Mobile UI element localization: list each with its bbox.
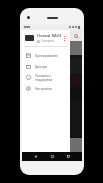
staticText: Смотреть — [41, 39, 54, 43]
button[interactable]: Новый RAV4 — [22, 30, 70, 46]
button[interactable]: Настройки — [22, 83, 70, 94]
button[interactable]: Home — [49, 153, 56, 160]
staticText: Новый RAV4 — [37, 33, 62, 38]
button[interactable]: Back — [32, 153, 39, 160]
button[interactable]: Recent apps — [65, 153, 72, 160]
staticText: Бронирование — [35, 54, 58, 58]
staticText: Условия и поддержка — [35, 74, 67, 82]
button[interactable]: Дилеры — [22, 61, 70, 72]
button[interactable]: Search — [73, 33, 79, 39]
button[interactable]: Бронирование — [22, 50, 70, 61]
staticText: Дилеры — [35, 65, 48, 69]
button[interactable]: Условия и поддержка — [22, 72, 70, 83]
staticText: Настройки — [35, 87, 52, 91]
button[interactable]: More options — [62, 35, 67, 42]
